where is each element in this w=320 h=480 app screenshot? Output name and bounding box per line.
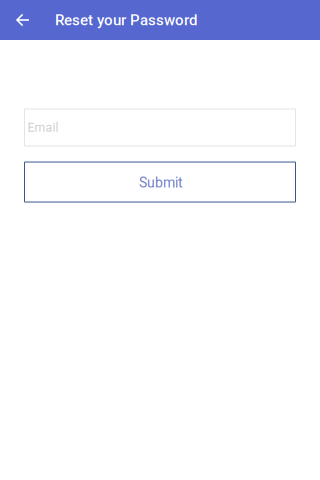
button[interactable]: Email <box>24 109 295 146</box>
staticText: Reset your Password <box>55 11 197 29</box>
staticText: Email <box>27 120 58 135</box>
button[interactable]: Back <box>0 0 40 40</box>
staticText: Submit <box>139 174 183 191</box>
button[interactable]: Submit <box>24 162 295 202</box>
